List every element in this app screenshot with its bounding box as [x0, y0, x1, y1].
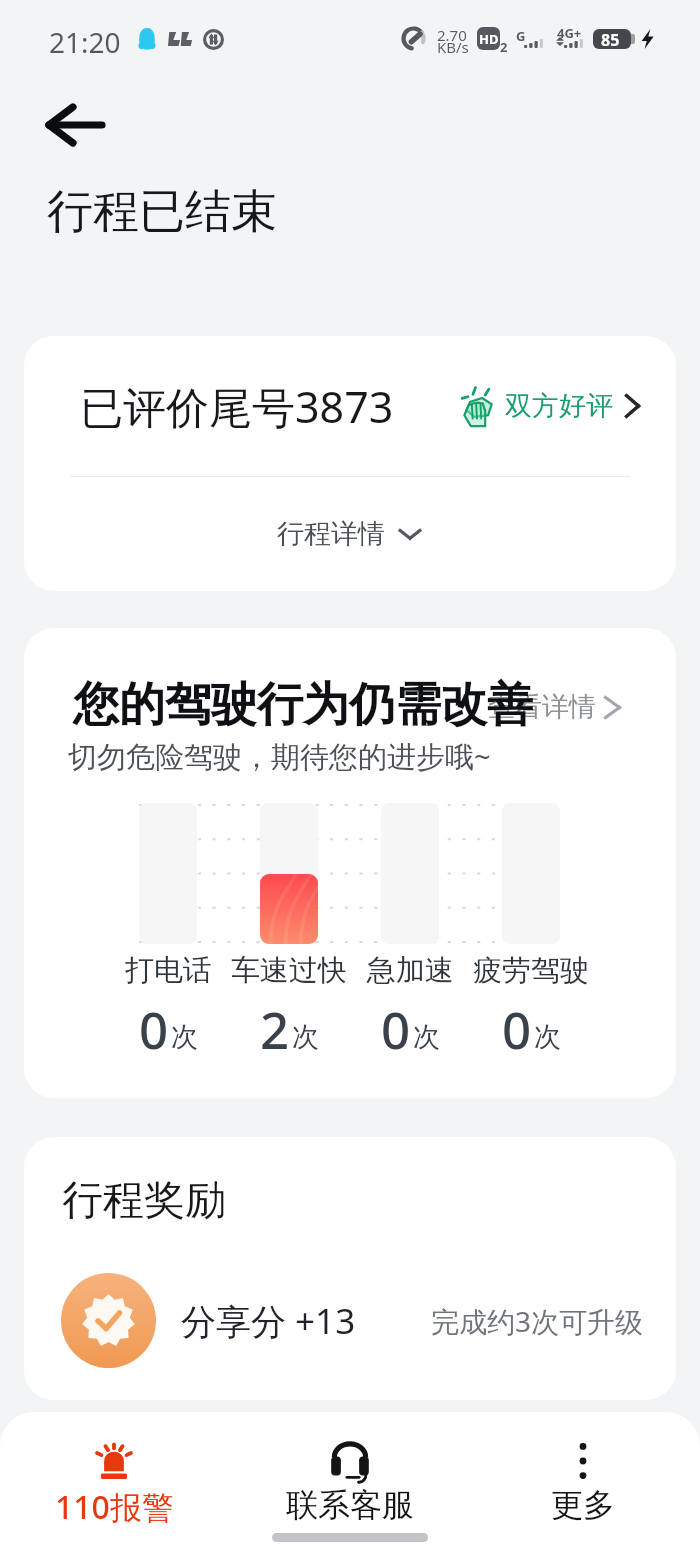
staticText: 85: [601, 29, 620, 49]
staticText: 次: [171, 1020, 198, 1054]
staticText: 更多: [551, 1485, 615, 1525]
other: Emergency siren: [92, 1444, 136, 1480]
staticText: KB/s: [437, 37, 469, 57]
staticText: 次: [413, 1020, 440, 1054]
staticText: 次: [292, 1020, 319, 1054]
button[interactable]: More options: [493, 1412, 673, 1555]
button[interactable]: 已评价尾号3873: [24, 336, 676, 476]
staticText: 4G+: [557, 24, 582, 42]
staticText: 行程奖励: [62, 1175, 226, 1227]
button[interactable]: Emergency siren: [24, 1412, 204, 1555]
staticText: 0: [139, 994, 169, 1063]
staticText: 110报警: [55, 1485, 174, 1529]
staticText: 打电话: [125, 952, 212, 989]
staticText: 疲劳驾驶: [473, 952, 589, 989]
staticText: 急加速: [367, 952, 454, 989]
staticText: 次: [534, 1020, 561, 1054]
staticText: 切勿危险驾驶，期待您的进步哦~: [68, 736, 491, 776]
staticText: 完成约3次可升级: [431, 1302, 644, 1340]
button[interactable]: 行程详情: [24, 477, 676, 591]
other: More options: [579, 1443, 587, 1479]
button[interactable]: Contact support: [260, 1412, 440, 1555]
staticText: 0: [502, 994, 532, 1063]
staticText: 已评价尾号3873: [80, 377, 394, 436]
staticText: 行程详情: [277, 517, 385, 551]
staticText: 2: [260, 994, 290, 1063]
staticText: 双方好评: [505, 389, 613, 423]
staticText: 分享分 +13: [181, 1297, 356, 1345]
staticText: 查看详情: [488, 690, 596, 724]
staticText: 车速过快: [231, 952, 347, 989]
staticText: 联系客服: [286, 1485, 414, 1525]
staticText: 2.70: [437, 25, 467, 45]
button[interactable]: Back: [37, 93, 114, 158]
staticText: 行程已结束: [47, 183, 277, 241]
button[interactable]: 查看详情: [488, 690, 621, 724]
staticText: 2: [500, 38, 508, 56]
staticText: 您的驾驶行为仍需改善: [73, 676, 533, 734]
staticText: 21:20: [49, 23, 121, 61]
staticText: G: [516, 27, 526, 45]
staticText: HD: [479, 30, 499, 48]
other: Contact support: [331, 1442, 369, 1480]
staticText: 0: [381, 994, 411, 1063]
